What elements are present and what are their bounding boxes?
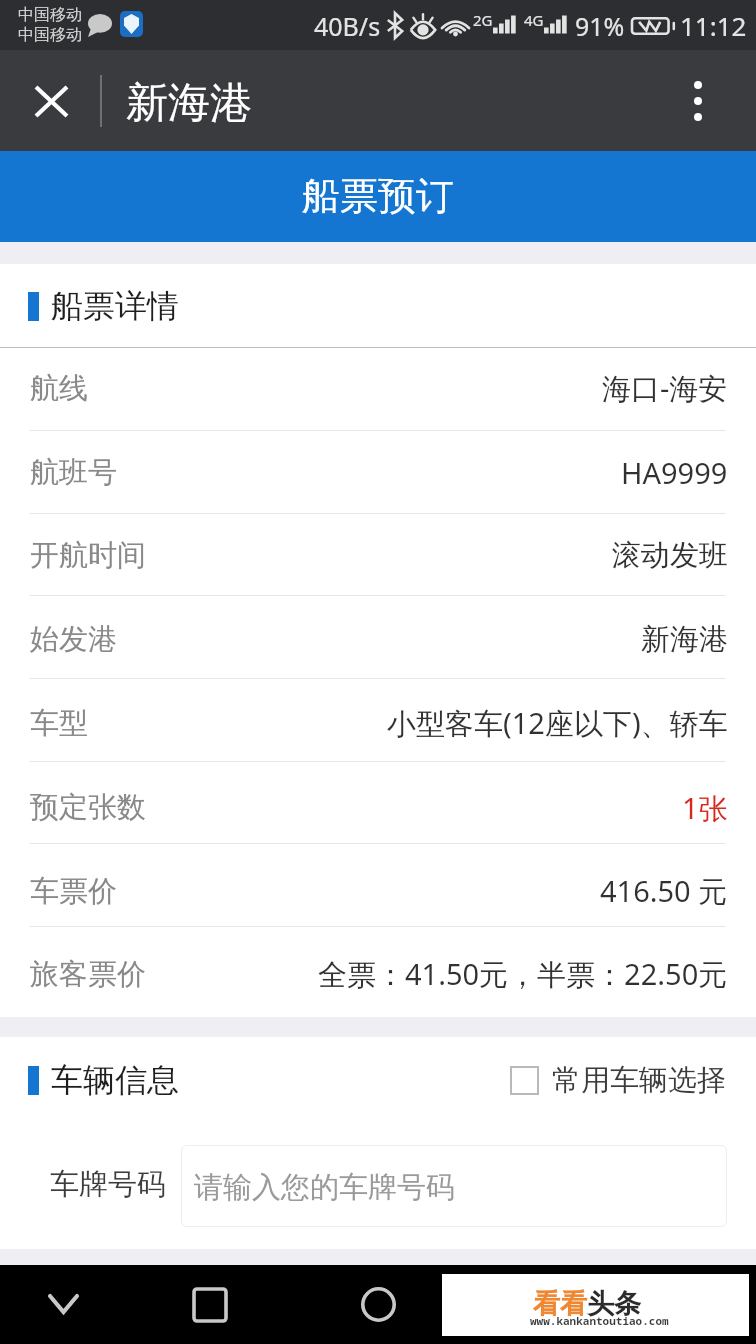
staticText: 小型客车(12座以下)、轿车 — [387, 703, 728, 743]
staticText: 开航时间 — [30, 537, 146, 574]
staticText: 1张 — [682, 788, 728, 828]
staticText: 新海港 — [641, 621, 728, 658]
staticText: 滚动发班 — [612, 537, 728, 574]
staticText: 船票预订 — [302, 172, 454, 220]
staticText: 请输入您的车牌号码 — [194, 1169, 455, 1206]
staticText: www.kankantoutiao.com — [530, 1313, 669, 1328]
staticText: 看看 — [533, 1287, 587, 1321]
button[interactable]: More options — [662, 65, 734, 137]
staticText: 头条 — [587, 1287, 641, 1321]
staticText: 车辆信息 — [51, 1060, 179, 1100]
button[interactable]: 车票价 — [0, 844, 756, 926]
button[interactable]: 航线 — [0, 348, 756, 430]
staticText: 车票价 — [30, 873, 117, 910]
button[interactable]: 航班号 — [0, 431, 756, 513]
button[interactable]: 请输入您的车牌号码 — [181, 1145, 727, 1227]
staticText: 40B/s — [314, 9, 381, 43]
staticText: 预定张数 — [30, 789, 146, 826]
button[interactable]: Close — [11, 61, 91, 141]
button[interactable]: 开航时间 — [0, 514, 756, 595]
staticText: 4G — [524, 10, 544, 30]
staticText: 车牌号码 — [50, 1166, 166, 1203]
staticText: HA9999 — [621, 453, 728, 492]
button[interactable]: Recent apps — [178, 1273, 242, 1337]
button[interactable]: Home — [346, 1272, 410, 1336]
button[interactable]: 旅客票价 — [0, 927, 756, 1017]
staticText: 新海港 — [126, 77, 252, 130]
staticText: 91% — [575, 9, 625, 43]
button[interactable]: Back — [31, 1272, 95, 1336]
staticText: 中国移动 — [18, 5, 82, 25]
staticText: 海口-海安 — [602, 368, 728, 408]
staticText: 旅客票价 — [30, 956, 146, 993]
staticText: 416.50 元 — [600, 871, 728, 911]
button[interactable]: 车型 — [0, 679, 756, 761]
button[interactable]: 常用车辆选择 — [510, 1062, 726, 1099]
staticText: 中国移动 — [18, 25, 82, 45]
button[interactable]: 预定张数 — [0, 762, 756, 843]
button[interactable]: 始发港 — [0, 596, 756, 678]
staticText: 航线 — [30, 370, 88, 407]
staticText: 车型 — [30, 705, 88, 742]
staticText: 始发港 — [30, 621, 117, 658]
staticText: 11:12 — [680, 8, 747, 43]
staticText: 航班号 — [30, 454, 117, 491]
staticText: 船票详情 — [51, 286, 179, 326]
staticText: 全票：41.50元，半票：22.50元 — [318, 954, 728, 994]
staticText: 2G — [473, 10, 493, 30]
staticText: 常用车辆选择 — [552, 1062, 726, 1099]
